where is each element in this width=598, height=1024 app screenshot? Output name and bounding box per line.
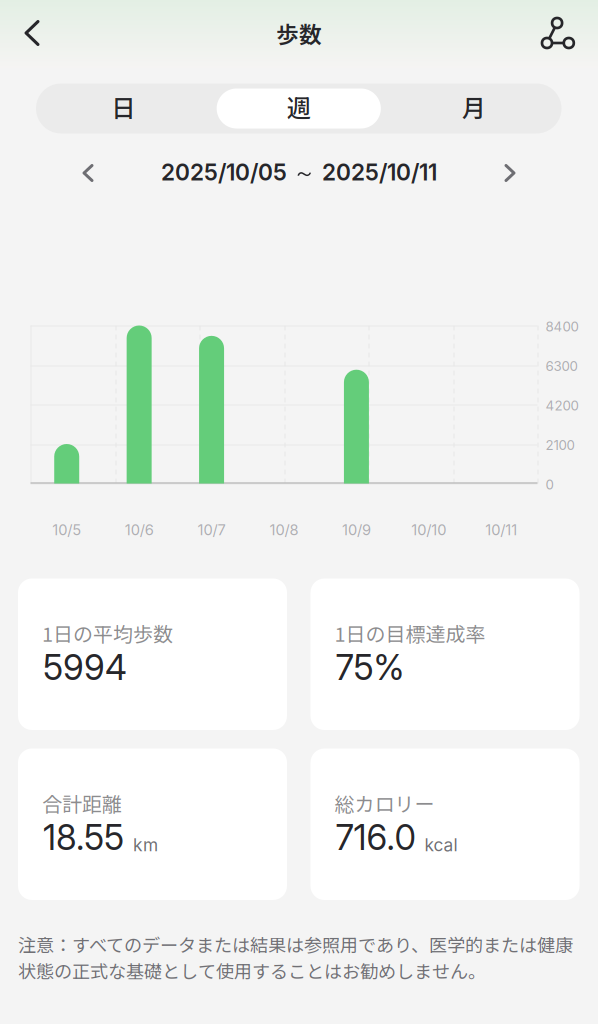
staticText: 1日の目標達成率 (334, 618, 485, 647)
staticText: 0 (545, 476, 553, 493)
button[interactable]: Share (532, 6, 584, 60)
staticText: 2100 (545, 437, 574, 453)
staticText: 10/8 (269, 521, 298, 539)
staticText: 6300 (545, 358, 577, 374)
button[interactable]: 1日の平均歩数 (18, 578, 287, 730)
staticText: 合計距離 (42, 788, 122, 817)
staticText: 8400 (545, 318, 578, 335)
button[interactable]: Back (6, 6, 58, 60)
staticText: 716.0 (335, 816, 415, 858)
staticText: 10/10 (411, 521, 446, 539)
staticText: 10/5 (52, 521, 81, 539)
staticText: kcal (424, 834, 457, 855)
staticText: km (133, 834, 158, 855)
button[interactable]: 合計距離 (18, 748, 287, 900)
staticText: 10/7 (198, 521, 226, 539)
button[interactable]: 1日の目標達成率 (310, 578, 579, 730)
button[interactable]: Next week (486, 150, 534, 196)
staticText: 総カロリー (334, 788, 434, 817)
staticText: 歩数 (276, 17, 322, 49)
staticText: 日 (112, 89, 136, 124)
staticText: 10/9 (342, 521, 371, 539)
staticText: 週 (287, 89, 311, 124)
staticText: 1日の平均歩数 (42, 618, 173, 647)
staticText: 月 (462, 89, 486, 124)
button[interactable]: Previous week (64, 150, 112, 196)
staticText: 5994 (43, 646, 127, 688)
button[interactable]: 日 (36, 83, 211, 133)
staticText: 4200 (545, 397, 578, 414)
button[interactable]: 週 (211, 83, 386, 133)
staticText: 75% (335, 646, 404, 688)
button[interactable]: 総カロリー (310, 748, 579, 900)
staticText: 2025/10/05 ～ 2025/10/11 (161, 159, 437, 187)
staticText: 10/11 (485, 521, 517, 539)
staticText: 10/6 (125, 521, 154, 539)
staticText: 注意：すべてのデータまたは結果は参照用であり、医学的または健康状態の正式な基礎と… (18, 931, 573, 983)
staticText: 18.55 (43, 816, 124, 858)
button[interactable]: 月 (386, 83, 561, 133)
